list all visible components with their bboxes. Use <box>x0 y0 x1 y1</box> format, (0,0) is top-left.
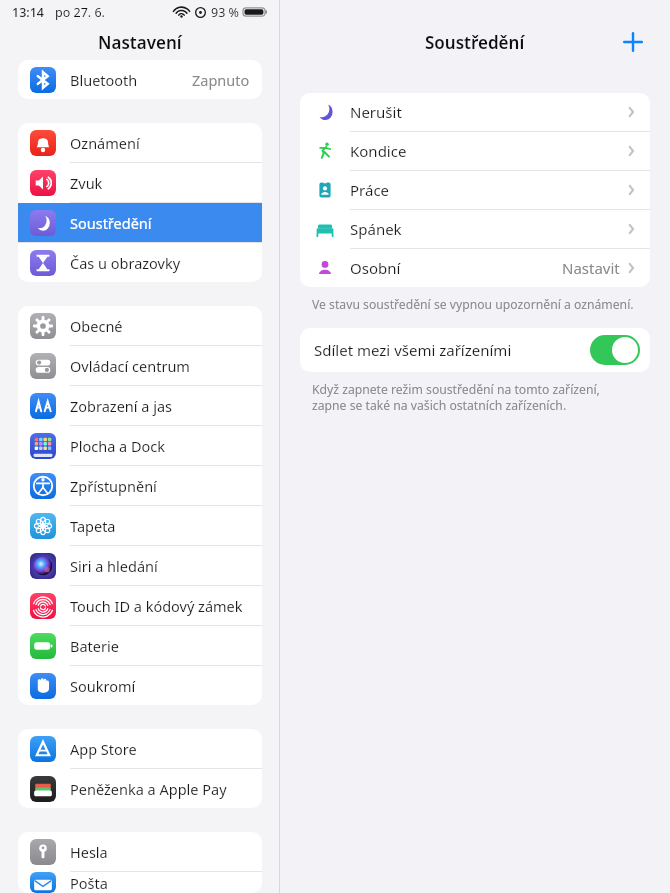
staticText: Bluetooth <box>70 70 192 90</box>
staticText: Zpřístupnění <box>70 476 250 496</box>
button[interactable]: Zobrazení a jas <box>18 386 262 425</box>
staticText: Když zapnete režim soustředění na tomto … <box>312 381 626 413</box>
button[interactable]: Touch ID a kódový zámek <box>18 586 262 625</box>
button[interactable]: Přidat režim soustředění <box>618 27 648 57</box>
button[interactable]: Kondice <box>300 132 650 170</box>
staticText: Touch ID a kódový zámek <box>70 596 250 616</box>
staticText: Plocha a Dock <box>70 436 250 456</box>
staticText: Nastavit <box>562 258 620 278</box>
staticText: Baterie <box>70 636 250 656</box>
staticText: Soustředění <box>70 213 250 233</box>
button[interactable]: App Store <box>18 729 262 768</box>
button[interactable]: Tapeta <box>18 506 262 545</box>
button[interactable]: Práce <box>300 171 650 209</box>
staticText: Nastavení <box>98 31 182 54</box>
button[interactable]: Čas u obrazovky <box>18 243 262 282</box>
staticText: Pošta <box>70 873 250 893</box>
staticText: App Store <box>70 739 250 759</box>
button[interactable]: Sdílet mezi všemi zařízeními <box>590 335 640 365</box>
staticText: Zapnuto <box>192 70 250 90</box>
staticText: 93 % <box>211 4 239 21</box>
staticText: po 27. 6. <box>55 4 105 21</box>
staticText: Peněženka a Apple Pay <box>70 779 250 799</box>
staticText: Čas u obrazovky <box>70 253 250 273</box>
staticText: Ovládací centrum <box>70 356 250 376</box>
staticText: Obecné <box>70 316 250 336</box>
staticText: Tapeta <box>70 516 250 536</box>
button[interactable]: Zvuk <box>18 163 262 202</box>
button[interactable]: Nerušit <box>300 93 650 131</box>
button[interactable]: Peněženka a Apple Pay <box>18 769 262 808</box>
button[interactable]: Soustředění <box>18 203 262 242</box>
staticText: Oznámení <box>70 133 250 153</box>
staticText: Spánek <box>350 219 626 239</box>
staticText: 13:14 <box>12 4 45 21</box>
button[interactable]: Osobní <box>300 249 650 287</box>
button[interactable]: Hesla <box>18 832 262 871</box>
staticText: Osobní <box>350 258 562 278</box>
button[interactable]: Soukromí <box>18 666 262 705</box>
button[interactable]: Siri a hledání <box>18 546 262 585</box>
button[interactable]: Plocha a Dock <box>18 426 262 465</box>
button[interactable]: Pošta <box>18 872 262 893</box>
staticText: Ve stavu soustředění se vypnou upozorněn… <box>312 296 634 313</box>
staticText: Soustředění <box>425 31 525 54</box>
button[interactable]: Baterie <box>18 626 262 665</box>
button[interactable]: Spánek <box>300 210 650 248</box>
button[interactable]: Sdílet mezi všemi zařízeními <box>300 328 650 372</box>
staticText: Hesla <box>70 842 250 862</box>
staticText: Nerušit <box>350 102 626 122</box>
staticText: Práce <box>350 180 626 200</box>
button[interactable]: Oznámení <box>18 123 262 162</box>
staticText: Sdílet mezi všemi zařízeními <box>314 340 590 360</box>
staticText: Soukromí <box>70 676 250 696</box>
button[interactable]: Bluetooth <box>18 60 262 99</box>
button[interactable]: Ovládací centrum <box>18 346 262 385</box>
button[interactable]: Zpřístupnění <box>18 466 262 505</box>
staticText: Zobrazení a jas <box>70 396 250 416</box>
button[interactable]: Obecné <box>18 306 262 345</box>
staticText: Zvuk <box>70 173 250 193</box>
staticText: Kondice <box>350 141 626 161</box>
staticText: Siri a hledání <box>70 556 250 576</box>
